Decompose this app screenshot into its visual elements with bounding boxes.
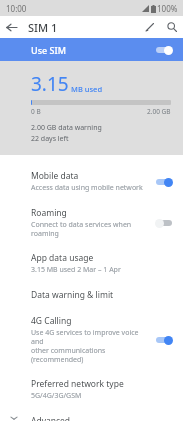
button[interactable]: Off	[154, 217, 174, 229]
staticText: 100%	[157, 3, 178, 14]
staticText: SIM 1	[28, 20, 58, 35]
staticText: Use 4G services to improve voice and oth…	[31, 328, 148, 364]
staticText: Mobile data	[31, 170, 79, 182]
staticText: Advanced	[31, 415, 71, 421]
staticText: 2.00 GB data warning	[31, 123, 102, 133]
button[interactable]: Roaming	[0, 200, 183, 245]
staticText: 10:00	[6, 3, 27, 14]
button[interactable]: Advanced	[0, 408, 183, 428]
button[interactable]: Search	[161, 16, 183, 38]
staticText: 5G/4G/3G/GSM	[31, 391, 82, 401]
button[interactable]: On	[154, 44, 174, 56]
staticText: 22 days left	[31, 134, 69, 144]
button[interactable]: Back	[0, 16, 22, 38]
button[interactable]: App data usage	[0, 245, 183, 282]
button[interactable]: Edit	[139, 16, 161, 38]
button[interactable]: On	[154, 334, 174, 346]
button[interactable]: Data warning & limit	[0, 282, 183, 308]
staticText: 3.15 MB used 2 Mar – 1 Apr	[31, 265, 121, 275]
staticText: 3.15	[31, 71, 69, 97]
staticText: Access data using mobile network	[31, 183, 143, 193]
staticText: 0 B	[31, 107, 41, 116]
button[interactable]: 4G Calling	[0, 308, 183, 371]
staticText: Use SIM	[31, 44, 154, 56]
staticText: Roaming	[31, 207, 67, 219]
button[interactable]: Mobile data	[0, 163, 183, 200]
staticText: Preferred network type	[31, 378, 124, 390]
staticText: Data warning & limit	[31, 289, 114, 301]
staticText: MB used	[71, 84, 103, 94]
staticText: 2.00 GB	[147, 107, 171, 116]
button[interactable]: Preferred network type	[0, 371, 183, 408]
staticText: 4G Calling	[31, 315, 72, 327]
button[interactable]: Use SIM	[0, 38, 183, 61]
button[interactable]: On	[154, 176, 174, 188]
staticText: App data usage	[31, 252, 94, 264]
staticText: Connect to data services when roaming	[31, 220, 148, 238]
